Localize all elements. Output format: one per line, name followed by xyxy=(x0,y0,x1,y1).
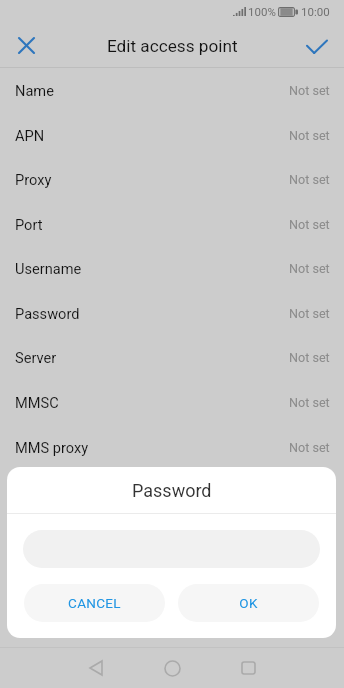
button[interactable]: MMS proxy xyxy=(0,425,344,469)
staticText: Not set xyxy=(289,261,330,276)
staticText: Not set xyxy=(289,395,330,410)
staticText: Not set xyxy=(289,172,330,187)
staticText: Not set xyxy=(289,83,330,98)
staticText: OK xyxy=(239,595,258,611)
staticText: Not set xyxy=(289,440,330,455)
staticText: Password xyxy=(132,480,212,501)
button[interactable]: Cancel xyxy=(0,23,52,68)
button[interactable]: Save xyxy=(290,23,344,68)
button[interactable]: OK xyxy=(178,584,319,622)
button[interactable]: Name xyxy=(0,68,344,113)
staticText: Not set xyxy=(289,128,330,143)
button[interactable]: Recents xyxy=(224,648,272,688)
staticText: 100% xyxy=(248,5,276,18)
button[interactable]: APN xyxy=(0,113,344,157)
button[interactable]: Password xyxy=(0,291,344,335)
staticText: 10:00 xyxy=(301,5,330,18)
staticText: Username xyxy=(15,260,82,277)
button[interactable]: Port xyxy=(0,202,344,246)
button[interactable]: MMSC xyxy=(0,380,344,425)
staticText: MMSC xyxy=(15,394,59,411)
staticText: Password xyxy=(15,305,80,322)
staticText: Not set xyxy=(289,217,330,232)
staticText: Name xyxy=(15,82,54,99)
staticText: Server xyxy=(15,349,57,366)
button[interactable]: CANCEL xyxy=(24,584,165,622)
staticText: CANCEL xyxy=(68,595,121,611)
staticText: Port xyxy=(15,216,43,233)
staticText: Proxy xyxy=(15,171,52,188)
button[interactable]: Back xyxy=(72,648,120,688)
staticText: Edit access point xyxy=(107,36,238,56)
staticText: Not set xyxy=(289,350,330,365)
button[interactable]: Home xyxy=(148,648,196,688)
button[interactable]: Proxy xyxy=(0,157,344,202)
button[interactable]: Server xyxy=(0,335,344,380)
staticText: APN xyxy=(15,127,45,144)
button[interactable]: Username xyxy=(0,246,344,291)
staticText: Not set xyxy=(289,306,330,321)
staticText: MMS proxy xyxy=(15,439,89,456)
